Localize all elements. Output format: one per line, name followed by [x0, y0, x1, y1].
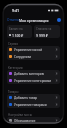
- staticText: Категории: [8, 66, 23, 70]
- staticText: Управление товарами: [14, 103, 55, 107]
- button[interactable]: Добавить товар: [7, 94, 60, 101]
- staticText: Добавить категорию: [14, 72, 55, 76]
- button[interactable]: Profile: [57, 18, 61, 22]
- staticText: 9 999 ₽: [36, 33, 48, 38]
- staticText: Управление категориями: [14, 79, 55, 83]
- button[interactable]: Оборудование: [7, 117, 60, 122]
- staticText: Сервис: [8, 42, 19, 46]
- button[interactable]: Управление товарами: [7, 101, 60, 108]
- button[interactable]: Управление категориями: [7, 77, 60, 84]
- button[interactable]: Сотрудники: [7, 53, 60, 60]
- staticText: Оборудование: [14, 119, 55, 122]
- button[interactable]: Управление кассой: [7, 46, 60, 53]
- staticText: 1 500 ₽: [12, 33, 24, 37]
- staticText: Баланс на сегодня: [9, 27, 31, 31]
- staticText: Товары: [8, 90, 19, 94]
- staticText: Сотрудники: [14, 55, 55, 59]
- staticText: Отмена: [7, 18, 19, 22]
- staticText: Управление кассой: [14, 48, 55, 52]
- staticText: 9:41: [12, 8, 20, 13]
- staticText: Списано за сегодня: [36, 27, 59, 31]
- button[interactable]: Списано за сегодня: [34, 25, 60, 38]
- button[interactable]: Добавить категорию: [7, 70, 60, 77]
- staticText: Моя организация: [19, 18, 49, 22]
- staticText: Добавить товар: [14, 96, 55, 100]
- button[interactable]: Баланс на сегодня: [7, 25, 32, 38]
- button[interactable]: Отмена: [5, 17, 21, 23]
- staticText: Настройки кассы: [8, 113, 32, 117]
